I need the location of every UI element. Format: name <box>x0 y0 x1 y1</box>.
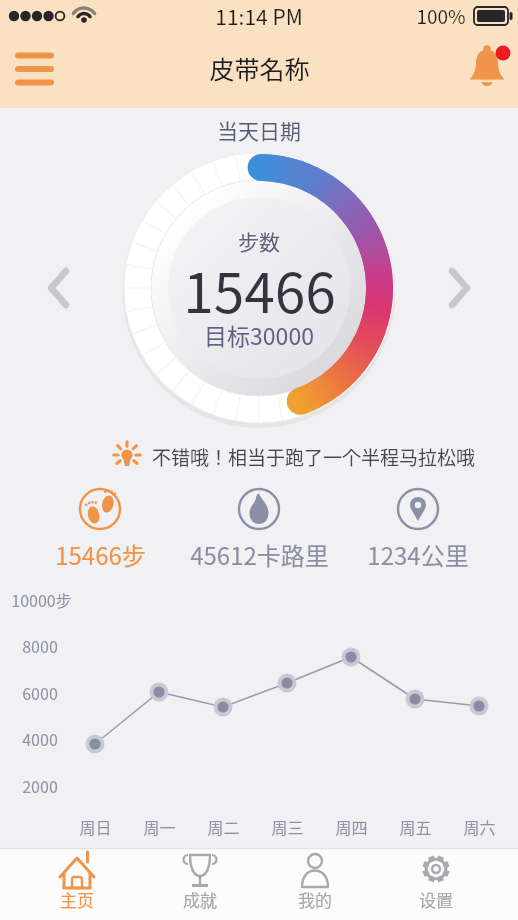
staticText: 8000 <box>22 634 58 657</box>
staticText: 1234公里 <box>367 537 469 572</box>
button[interactable] <box>36 260 80 316</box>
staticText: 2000 <box>22 774 58 797</box>
button[interactable] <box>389 848 518 920</box>
staticText: 目标30000 <box>204 318 314 351</box>
button[interactable] <box>259 848 389 920</box>
staticText: 周三 <box>271 815 304 838</box>
staticText: 15466 <box>183 249 336 329</box>
button[interactable] <box>212 480 307 575</box>
staticText: 周日 <box>79 815 112 838</box>
staticText: 步数 <box>238 226 280 256</box>
staticText: 周一 <box>143 815 176 838</box>
staticText: 周五 <box>399 815 432 838</box>
staticText: 当天日期 <box>217 115 301 145</box>
staticText: 设置 <box>419 887 453 912</box>
staticText: 成就 <box>183 887 217 912</box>
button[interactable] <box>10 46 60 92</box>
staticText: 皮带名称 <box>209 50 310 86</box>
staticText: 周二 <box>207 815 240 838</box>
staticText: 不错哦！相当于跑了一个半程马拉松哦 <box>152 443 476 471</box>
button[interactable] <box>130 848 260 920</box>
staticText: 主页 <box>60 887 94 912</box>
staticText: 45612卡路里 <box>190 537 329 572</box>
staticText: 6000 <box>22 681 58 704</box>
button[interactable] <box>462 40 514 98</box>
button[interactable] <box>55 480 150 575</box>
staticText: 100% <box>416 2 466 30</box>
staticText: 10000步 <box>11 588 72 611</box>
staticText: 11:14 PM <box>215 1 303 31</box>
staticText: 周四 <box>335 815 368 838</box>
staticText: 15466步 <box>55 537 146 572</box>
staticText: 周六 <box>463 815 496 838</box>
button[interactable] <box>438 260 482 316</box>
button[interactable] <box>0 848 130 920</box>
staticText: 我的 <box>298 887 332 912</box>
button[interactable] <box>371 480 466 575</box>
staticText: 4000 <box>22 727 58 750</box>
